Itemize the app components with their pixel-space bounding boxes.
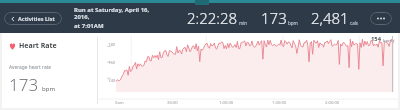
staticText: 173 [261, 8, 287, 28]
staticText: Average heart rate [9, 64, 52, 71]
staticText: bpm [383, 37, 393, 43]
staticText: bpm [288, 20, 298, 26]
staticText: Run at Saturday, April 16, 2016, [74, 6, 152, 21]
staticText: 5am [115, 100, 124, 106]
staticText: 1:30:00 [272, 100, 287, 106]
button[interactable]: More options [370, 12, 392, 25]
staticText: 2:22:28 [187, 8, 238, 28]
staticText: Heart Rate [19, 41, 57, 51]
staticText: 140 [108, 78, 116, 84]
staticText: 180 [108, 42, 116, 48]
staticText: 173 [9, 73, 39, 96]
button[interactable]: Activities List [4, 12, 62, 25]
staticText: cals [350, 20, 359, 26]
staticText: Activities List [18, 15, 55, 22]
staticText: 2:00:00 [325, 100, 340, 106]
staticText: 30:00 [167, 100, 178, 106]
staticText: bpm [42, 85, 55, 93]
staticText: 154 [371, 35, 381, 43]
staticText: at 7:01AM [74, 22, 104, 30]
staticText: 2,481 [311, 8, 349, 28]
staticText: min [239, 20, 248, 26]
staticText: 1:00:00 [219, 100, 234, 106]
staticText: 160 [108, 60, 116, 66]
